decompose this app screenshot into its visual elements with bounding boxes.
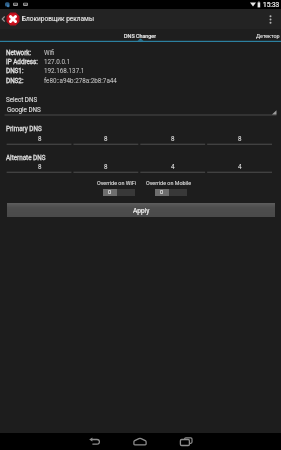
staticText: 8 [38,135,42,142]
button[interactable]: Google DNS [0,106,281,116]
staticText: 8 [104,135,108,142]
button[interactable]: 4 [140,163,205,175]
staticText: 8 [171,135,175,142]
button[interactable]: 8 [7,163,72,175]
staticText: 4 [171,163,175,170]
button[interactable]: 8 [207,135,272,147]
staticText: O [108,190,112,195]
staticText: DNS2: [6,77,24,84]
staticText: Apply [133,207,150,215]
staticText: Google DNS [7,106,41,113]
staticText: 4 [238,163,242,170]
staticText: DNS Changer [124,33,157,39]
staticText: Select DNS [6,96,38,103]
staticText: Override on WiFi [97,180,137,186]
button[interactable]: DNS Changer [94,29,187,42]
staticText: Primary DNS [6,125,42,132]
button[interactable]: Recent apps [174,433,198,450]
staticText: Network: [6,49,32,56]
button[interactable]: 8 [140,135,205,147]
button[interactable]: 8 [7,135,72,147]
staticText: IP Address: [6,58,38,65]
button[interactable]: Apply [7,203,275,217]
button[interactable]: 4 [207,163,272,175]
button[interactable]: O [103,189,135,196]
staticText: 192.168.137.1 [44,67,85,74]
staticText: Блокировщик рекламы [22,15,94,23]
staticText: Override on Mobile [146,180,192,186]
button[interactable]: 8 [73,163,138,175]
staticText: Детектор [256,33,280,39]
staticText: 8 [238,135,242,142]
staticText: 127.0.0.1 [44,58,71,65]
staticText: fe80::a94b:278a:2b8:7a44 [44,77,117,84]
staticText: Wifi [44,49,55,56]
button[interactable]: Детектор [243,29,281,42]
staticText: 8 [38,163,42,170]
staticText: 15:33 [263,1,280,9]
staticText: Alternate DNS [6,154,46,161]
button[interactable]: 8 [73,135,138,147]
staticText: DNS1: [6,67,24,74]
button[interactable]: O [155,189,187,196]
button[interactable]: Блокировщик рекламы [0,9,281,29]
button[interactable]: Home [128,433,152,450]
button[interactable]: Back [83,433,107,450]
staticText: 8 [104,163,108,170]
button[interactable]: More options [263,9,277,29]
staticText: O [160,190,164,195]
